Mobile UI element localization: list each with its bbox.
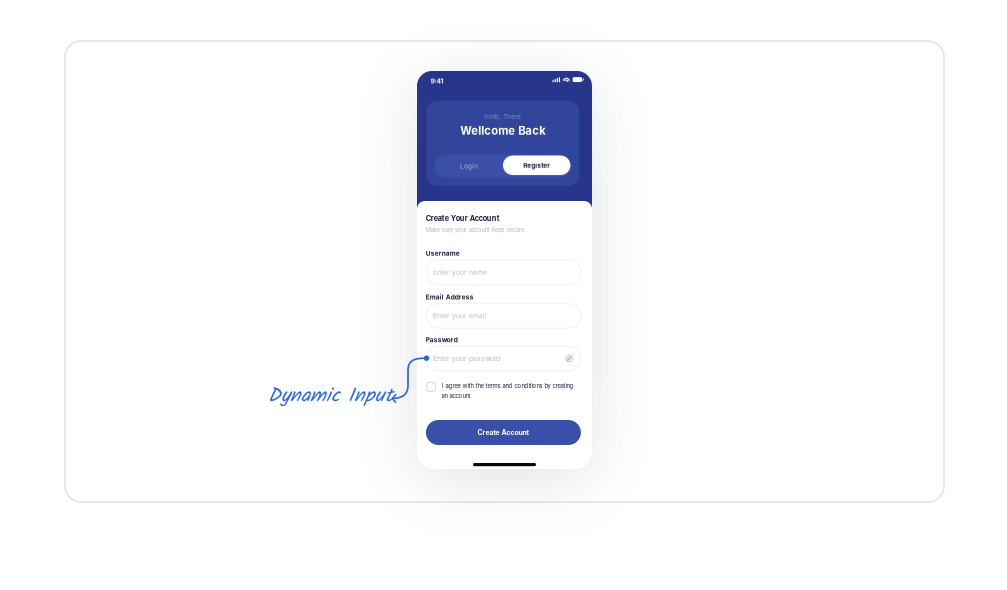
- staticText: Password: [426, 336, 458, 344]
- staticText: Login: [460, 162, 478, 170]
- button[interactable]: I agree with the terms and conditions by…: [427, 382, 574, 399]
- staticText: an account: [442, 392, 471, 399]
- staticText: Username: [426, 249, 460, 257]
- button[interactable]: Enter your password: [426, 346, 581, 371]
- staticText: Make sure your account keep secure: [426, 226, 524, 233]
- button[interactable]: Enter your email: [426, 304, 581, 328]
- staticText: Hello, There: [484, 113, 521, 120]
- staticText: Email Address: [426, 293, 474, 301]
- staticText: I agree with the terms and conditions by…: [442, 382, 574, 389]
- staticText: Dynamic Input: [268, 380, 393, 412]
- staticText: Wellcome Back: [460, 124, 545, 137]
- button[interactable]: Register: [503, 155, 570, 175]
- staticText: Register: [523, 161, 550, 169]
- staticText: 9:41: [431, 77, 444, 85]
- staticText: Create Your Account: [426, 214, 500, 223]
- button[interactable]: Login: [435, 155, 503, 178]
- staticText: Enter your name: [433, 268, 487, 276]
- button[interactable]: Enter your name: [426, 260, 581, 284]
- staticText: Enter your email: [433, 312, 487, 320]
- staticText: Create Account: [477, 428, 529, 437]
- staticText: Enter your password: [433, 354, 500, 363]
- button[interactable]: Create Account: [426, 420, 581, 445]
